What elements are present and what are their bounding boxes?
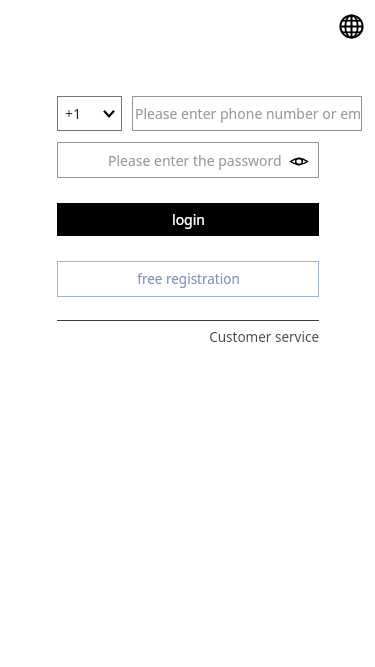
staticText: login [172,210,205,229]
button[interactable]: login [57,203,319,236]
button[interactable]: Please enter the password [57,142,319,178]
staticText: Customer service [209,328,319,346]
staticText: Please enter phone number or email [135,104,362,123]
staticText: Please enter the password [108,151,282,170]
button[interactable]: free registration [57,261,319,297]
button[interactable]: +1 [57,96,122,131]
staticText: free registration [137,270,240,288]
button[interactable]: Please enter phone number or email [132,96,362,131]
button[interactable]: Show password [290,154,308,168]
staticText: +1 [65,104,82,123]
button[interactable]: Language [337,12,365,40]
button[interactable]: Customer service [200,328,319,346]
